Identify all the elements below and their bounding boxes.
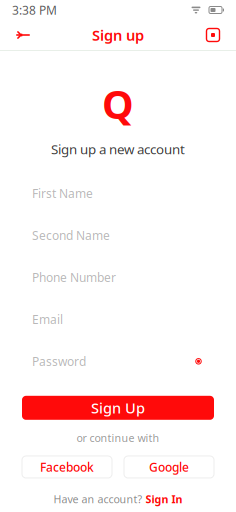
staticText: Email — [32, 311, 63, 327]
staticText: Have an account? — [53, 492, 142, 506]
staticText: Sign Up — [91, 398, 145, 418]
staticText: Sign up a new account — [51, 140, 185, 158]
staticText: Facebook — [40, 459, 94, 475]
staticText: Sign up — [92, 25, 144, 45]
staticText: Q — [102, 77, 134, 130]
staticText: 3:38 PM — [12, 2, 57, 18]
staticText: First Name — [32, 185, 93, 201]
button[interactable]: Google — [124, 456, 214, 478]
button[interactable]: Sign Up — [22, 396, 214, 420]
button[interactable]: Facebook — [22, 456, 112, 478]
staticText: or continue with — [76, 431, 159, 445]
staticText: Google — [149, 459, 189, 475]
button[interactable]: Scan code — [198, 20, 228, 50]
staticText: Password — [32, 353, 86, 369]
button[interactable]: Back — [8, 20, 38, 50]
staticText: Sign In — [145, 492, 182, 506]
staticText: Phone Number — [32, 269, 116, 285]
staticText: Second Name — [32, 227, 110, 243]
button[interactable]: Have an account? — [47, 488, 188, 510]
